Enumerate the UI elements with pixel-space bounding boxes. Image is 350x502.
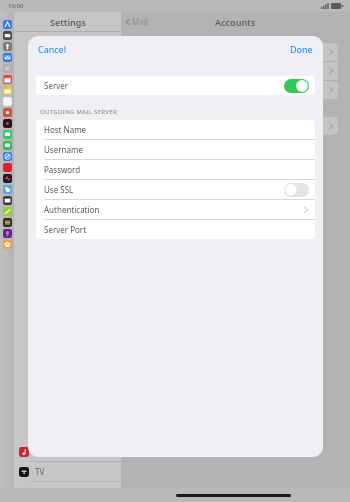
button[interactable]: M	[3, 53, 12, 62]
button[interactable]: TV	[14, 462, 121, 481]
button[interactable]: HM	[3, 240, 12, 249]
button[interactable]: A	[3, 20, 12, 29]
button[interactable]: P	[3, 108, 12, 117]
button[interactable]	[127, 62, 338, 80]
staticText: TV	[35, 466, 45, 477]
button[interactable]: Mail	[126, 16, 148, 27]
button[interactable]: F	[3, 119, 12, 128]
button[interactable]	[127, 43, 338, 61]
staticText: Settings	[50, 16, 86, 28]
button[interactable]: PC	[3, 229, 12, 238]
button[interactable]: WX	[3, 185, 12, 194]
staticText: Cancel	[38, 43, 67, 55]
staticText: Server Port	[44, 224, 87, 235]
button[interactable]: Server Port	[36, 219, 315, 239]
button[interactable]: C	[3, 64, 12, 73]
button[interactable]	[127, 81, 338, 99]
button[interactable]: BK	[3, 218, 12, 227]
staticText: Authentication	[44, 204, 100, 215]
button[interactable]: K	[3, 42, 12, 51]
staticText: Host Name	[44, 124, 87, 135]
staticText: Accounts	[215, 16, 256, 28]
staticText: Password	[44, 164, 81, 175]
staticText: OUTGOING MAIL SERVER	[40, 108, 117, 116]
button[interactable]: Music	[14, 442, 121, 461]
button[interactable]: R	[3, 97, 12, 106]
button[interactable]: S	[3, 152, 12, 161]
button[interactable]: Use SSL	[36, 179, 315, 199]
button[interactable]: Cancel	[28, 36, 67, 62]
button[interactable]: Host Name	[36, 120, 315, 139]
staticText: Mail	[132, 16, 148, 27]
button[interactable]: Toggle on	[284, 79, 309, 93]
button[interactable]: MS	[3, 130, 12, 139]
staticText: Server	[44, 80, 69, 91]
button[interactable]: Authentication	[36, 199, 315, 219]
staticText: Done	[290, 43, 313, 55]
button[interactable]: NW	[3, 163, 12, 172]
button[interactable]: H	[3, 174, 12, 183]
button[interactable]: CAL	[3, 75, 12, 84]
staticText: Use SSL	[44, 184, 74, 195]
button[interactable]: MP	[3, 207, 12, 216]
button[interactable]: TV2	[3, 196, 12, 205]
staticText: Username	[44, 144, 83, 155]
button[interactable]: FT	[3, 141, 12, 150]
button[interactable]: Password	[36, 159, 315, 179]
button[interactable]: W	[3, 31, 12, 40]
button[interactable]: N	[3, 86, 12, 95]
button[interactable]: Done	[290, 36, 323, 62]
staticText: 10:00	[8, 2, 24, 10]
button[interactable]	[127, 117, 338, 135]
button[interactable]: Toggle off	[284, 183, 309, 197]
button[interactable]: Server	[36, 76, 315, 95]
button[interactable]: Username	[36, 139, 315, 159]
